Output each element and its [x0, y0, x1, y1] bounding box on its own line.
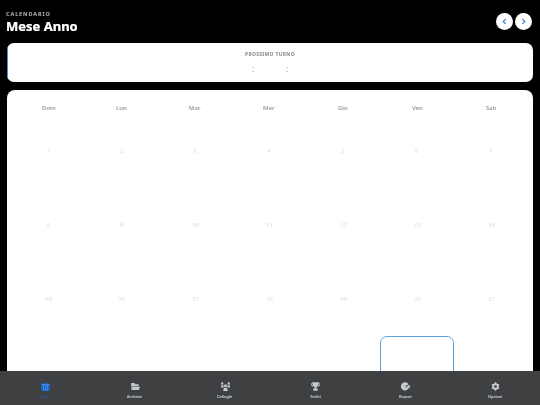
staticText: PROSSIMO TURNO	[245, 51, 295, 58]
staticText: CALENDARIO	[6, 10, 51, 17]
button[interactable]: Report	[360, 371, 450, 405]
staticText: Ven	[412, 104, 423, 112]
staticText: Trofei	[310, 394, 321, 399]
staticText: 11	[266, 221, 273, 229]
staticText: 4	[267, 147, 271, 155]
staticText: 7	[489, 147, 493, 155]
staticText: 5	[341, 147, 345, 155]
staticText: 19	[340, 295, 347, 303]
staticText: 18	[266, 295, 273, 303]
staticText: Opzioni	[488, 394, 503, 399]
staticText: Mer	[263, 104, 275, 112]
staticText: 6	[415, 147, 419, 155]
staticText: Archivio	[127, 394, 143, 399]
button[interactable]: Mese successivo	[515, 13, 532, 30]
staticText: 15	[45, 295, 52, 303]
staticText: Dom	[42, 104, 56, 112]
staticText: 12	[340, 221, 347, 229]
staticText: 21	[488, 295, 495, 303]
staticText: 17	[192, 295, 199, 303]
button[interactable]: Mese precedente	[496, 13, 513, 30]
staticText: :	[252, 63, 255, 74]
staticText: Report	[399, 394, 412, 399]
staticText: 14	[488, 221, 495, 229]
staticText: 3	[193, 147, 197, 155]
button[interactable]: Archivio	[90, 371, 180, 405]
staticText: Colleghi	[217, 394, 233, 399]
staticText: Lun	[116, 104, 127, 112]
staticText: :	[286, 63, 289, 74]
staticText: Mese Anno	[6, 17, 78, 35]
staticText: Sab	[486, 104, 497, 112]
staticText: Home	[39, 394, 51, 399]
button[interactable]: 27	[380, 336, 454, 371]
staticText: Mar	[189, 104, 201, 112]
button[interactable]: Colleghi	[180, 371, 270, 405]
button[interactable]: Opzioni	[450, 371, 540, 405]
staticText: 13	[414, 221, 421, 229]
staticText: 8	[47, 221, 51, 229]
staticText: 10	[192, 221, 199, 229]
staticText: 20	[414, 295, 421, 303]
staticText: 9	[120, 221, 124, 229]
staticText: Gio	[338, 104, 348, 112]
staticText: 1	[47, 147, 51, 155]
staticText: 16	[118, 295, 125, 303]
button[interactable]: PROSSIMO TURNO	[7, 43, 533, 82]
button[interactable]: Home	[0, 371, 90, 405]
staticText: 2	[120, 147, 124, 155]
button[interactable]: Trofei	[270, 371, 360, 405]
